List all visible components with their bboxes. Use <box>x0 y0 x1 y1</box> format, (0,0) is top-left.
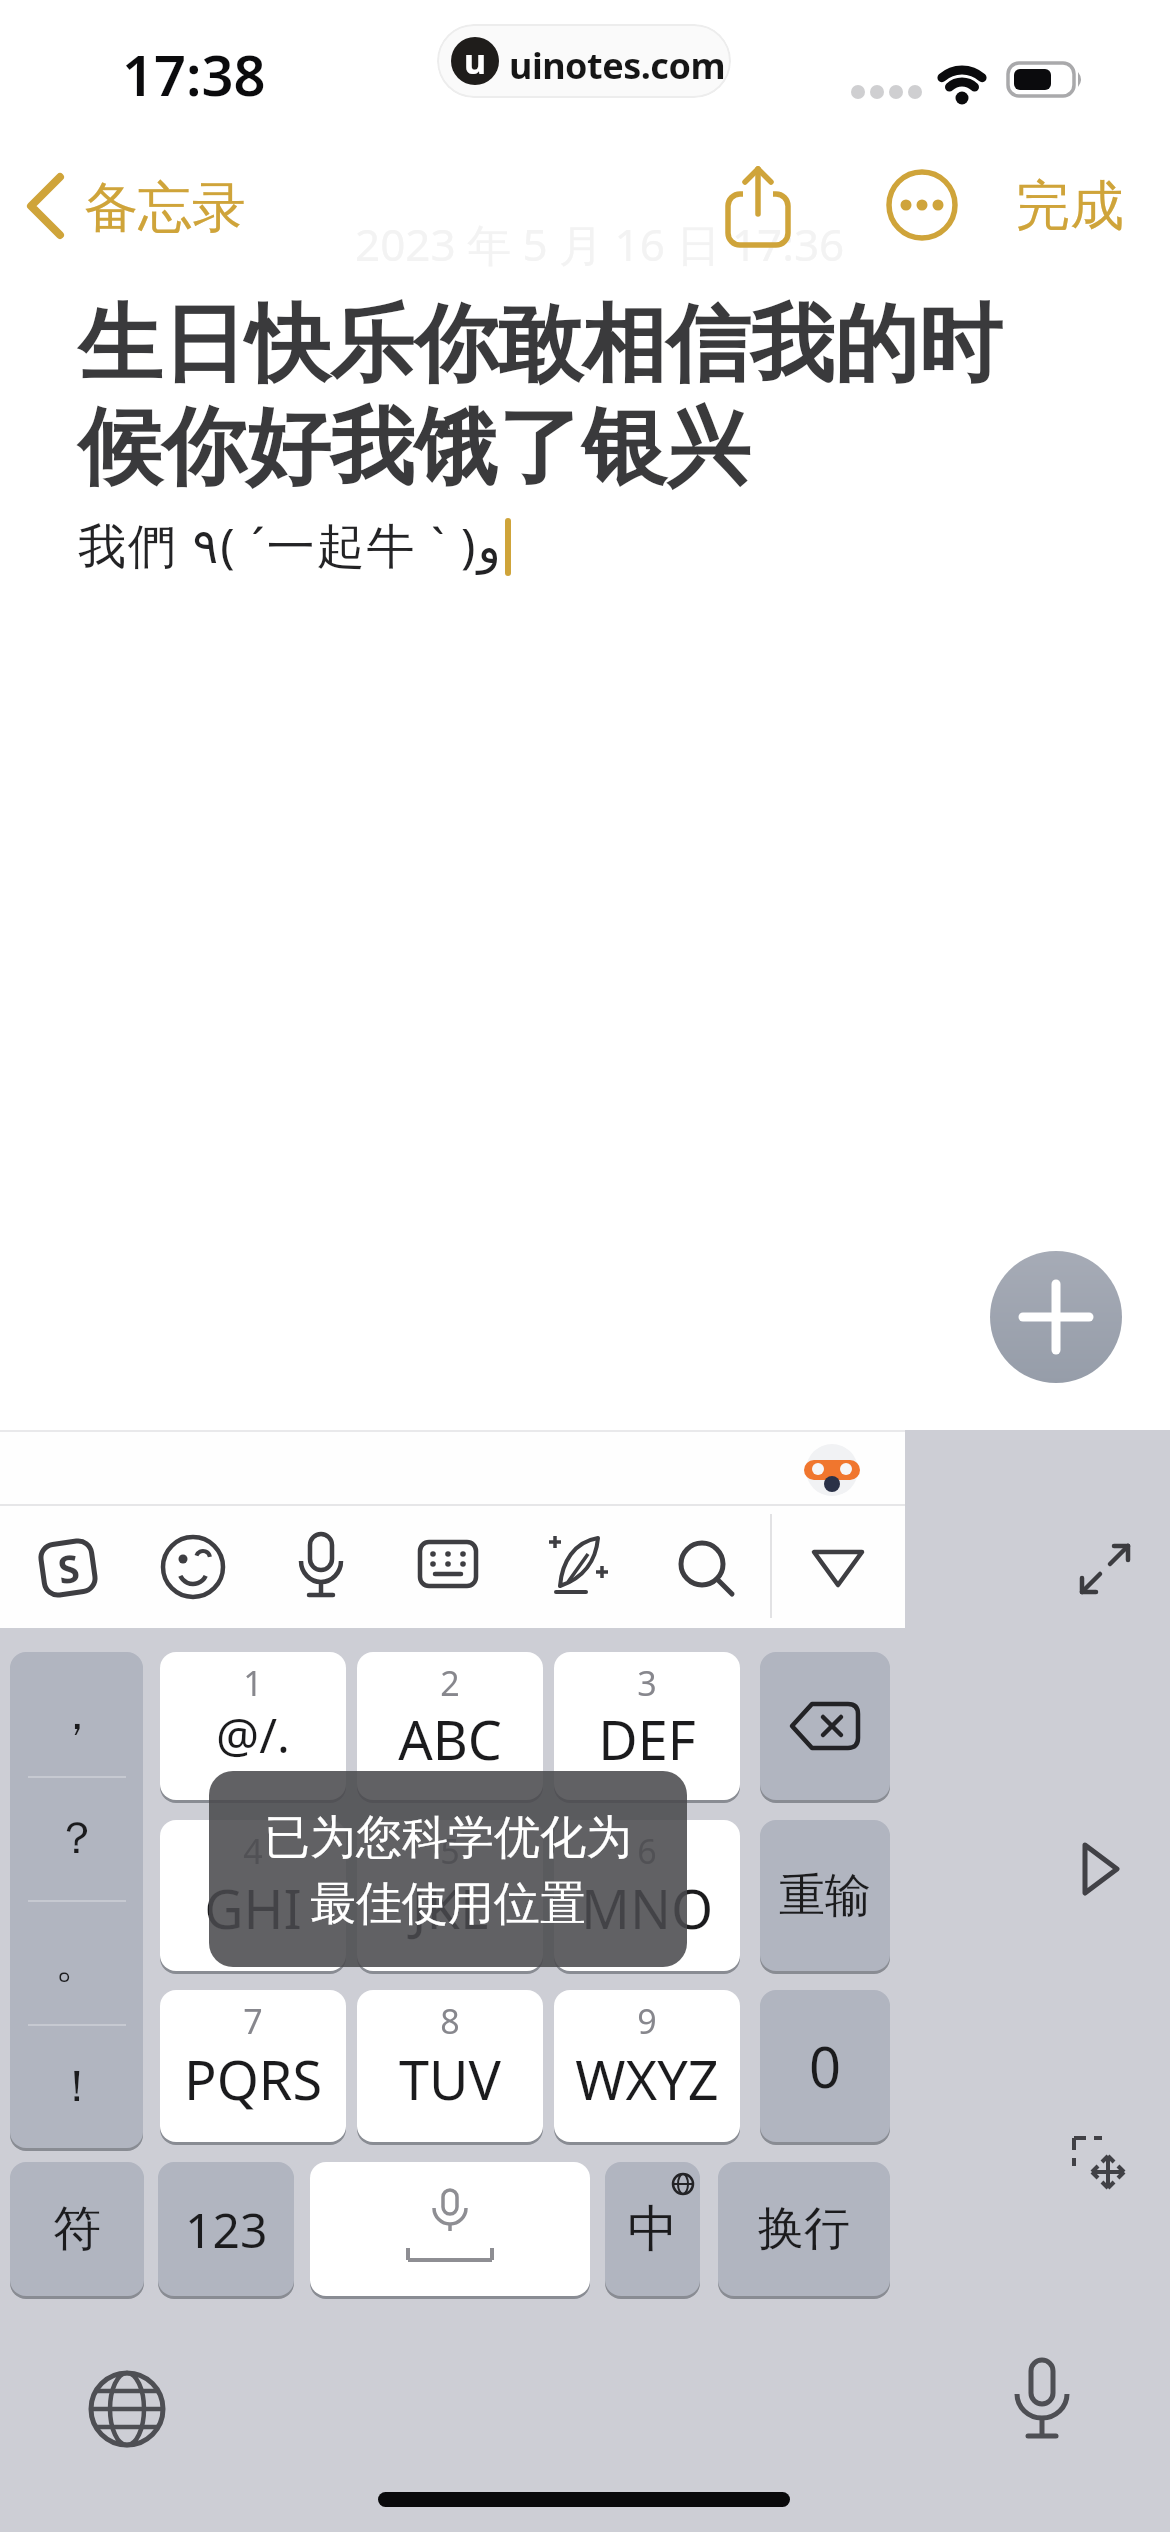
button[interactable]: 符 <box>10 2162 144 2296</box>
button[interactable]: 5 <box>357 1820 543 1971</box>
button[interactable]: 0 <box>760 1990 890 2142</box>
staticText: 已为您科学优化为 <box>209 1809 687 1873</box>
staticText: 重输 <box>779 1867 871 1925</box>
staticText: GHI <box>160 1871 346 1966</box>
button[interactable] <box>880 163 964 247</box>
button[interactable] <box>810 1548 866 1590</box>
button[interactable]: 3 <box>554 1652 740 1800</box>
staticText: 123 <box>185 2197 268 2262</box>
button[interactable]: 2 <box>357 1652 543 1800</box>
button[interactable]: 4 <box>160 1820 346 1971</box>
button[interactable]: 备忘录 <box>20 164 250 248</box>
staticText: 8 <box>357 1998 543 2038</box>
button[interactable]: 7 <box>160 1990 346 2142</box>
button[interactable]: ， <box>10 1652 143 2148</box>
staticText: u <box>464 38 487 84</box>
staticText: 最佳使用位置 <box>209 1875 687 1939</box>
staticText: WXYZ <box>554 2042 740 2138</box>
button[interactable] <box>1076 1540 1134 1598</box>
staticText: TUV <box>357 2042 543 2138</box>
staticText: 备忘录 <box>84 174 246 242</box>
button[interactable]: 123 <box>158 2162 294 2296</box>
staticText: ， <box>55 1687 99 1742</box>
button[interactable]: 换行 <box>718 2162 890 2296</box>
button[interactable]: 重输 <box>760 1820 890 1971</box>
staticText: ！ <box>55 2059 99 2114</box>
staticText: 3 <box>554 1660 740 1700</box>
button[interactable] <box>1068 2132 1128 2192</box>
button[interactable]: 1 <box>160 1652 346 1800</box>
staticText: DEF <box>554 1702 740 1796</box>
staticText: uinotes.com <box>509 41 726 90</box>
staticText: 生日快乐你敢相信我的时 候你好我饿了银兴 <box>78 292 1138 601</box>
button[interactable]: u <box>437 24 731 98</box>
staticText: 。 <box>55 1935 99 1990</box>
staticText: MNO <box>554 1871 740 1966</box>
staticText: 2023 年 5 月 16 日 17:36 <box>355 214 845 274</box>
button[interactable] <box>1080 1840 1124 1898</box>
button[interactable] <box>676 1538 736 1598</box>
button[interactable]: 完成 <box>1016 172 1124 240</box>
button[interactable]: S <box>36 1536 100 1600</box>
staticText: 我們 ٩( ´一起牛 ` )و <box>78 512 503 578</box>
staticText: 6 <box>554 1828 740 1868</box>
button[interactable] <box>548 1532 610 1600</box>
button[interactable] <box>418 1540 478 1590</box>
staticText: 符 <box>53 2199 101 2259</box>
staticText: 0 <box>809 2028 842 2104</box>
button[interactable] <box>760 1652 890 1800</box>
staticText: ？ <box>55 1811 99 1866</box>
button[interactable]: 9 <box>554 1990 740 2142</box>
staticText: 换行 <box>758 2200 850 2258</box>
staticText: 5 <box>357 1828 543 1868</box>
staticText: JKL <box>357 1871 543 1966</box>
button[interactable] <box>716 160 800 252</box>
button[interactable] <box>310 2162 590 2296</box>
button[interactable] <box>1010 2358 1074 2450</box>
staticText: @/. <box>160 1702 346 1796</box>
button[interactable] <box>296 1532 346 1602</box>
staticText: 17:38 <box>122 36 266 112</box>
button[interactable] <box>86 2368 168 2450</box>
staticText: 7 <box>160 1998 346 2038</box>
staticText: S <box>54 1541 82 1595</box>
button[interactable]: 8 <box>357 1990 543 2142</box>
staticText: 1 <box>160 1660 346 1700</box>
staticText: PQRS <box>160 2042 346 2138</box>
staticText: 9 <box>554 1998 740 2038</box>
button[interactable] <box>990 1251 1122 1383</box>
staticText: ABC <box>357 1702 543 1796</box>
button[interactable] <box>160 1534 226 1600</box>
staticText: 2 <box>357 1660 543 1700</box>
button[interactable]: 6 <box>554 1820 740 1971</box>
staticText: 4 <box>160 1828 346 1868</box>
button[interactable]: 中 <box>605 2162 700 2296</box>
staticText: 中 <box>605 2198 700 2268</box>
